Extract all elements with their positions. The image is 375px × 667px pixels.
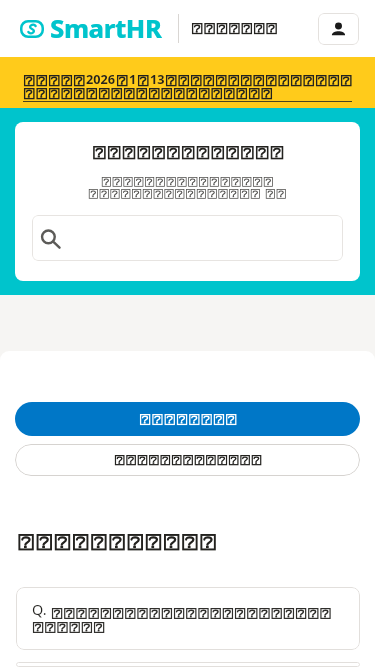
staticText: SmartHR (50, 11, 162, 46)
button[interactable]: Search (32, 215, 343, 261)
staticText: 2026 (86, 70, 116, 87)
staticText: 13 (150, 70, 165, 87)
button[interactable]: Q. (16, 662, 360, 667)
button[interactable]: Account (318, 13, 359, 45)
staticText: Q. (32, 600, 47, 620)
button[interactable] (15, 402, 360, 436)
button[interactable]: Q. (16, 587, 360, 650)
button[interactable]: 2026 (0, 57, 375, 108)
button[interactable] (15, 444, 360, 476)
button[interactable] (191, 23, 278, 34)
staticText: 1 (129, 70, 137, 87)
button[interactable]: SmartHR home (20, 11, 162, 46)
